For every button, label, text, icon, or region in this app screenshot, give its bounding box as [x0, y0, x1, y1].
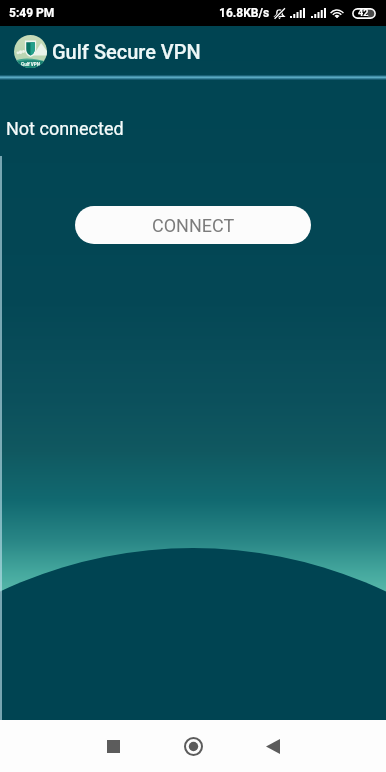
staticText: 16.8KB/s — [219, 6, 270, 20]
staticText: 42 — [358, 8, 369, 19]
button[interactable]: CONNECT — [75, 206, 311, 244]
staticText: Gulf Secure VPN — [52, 40, 201, 63]
staticText: Not connected — [6, 118, 124, 139]
button[interactable]: Back — [240, 720, 306, 772]
button[interactable]: Home — [160, 720, 226, 772]
button[interactable]: Gulf VPN — [14, 35, 201, 68]
staticText: CONNECT — [152, 215, 235, 236]
staticText: 5:49 PM — [9, 6, 55, 20]
button[interactable]: Recent apps — [80, 720, 146, 772]
staticText: Gulf VPN — [21, 62, 40, 67]
